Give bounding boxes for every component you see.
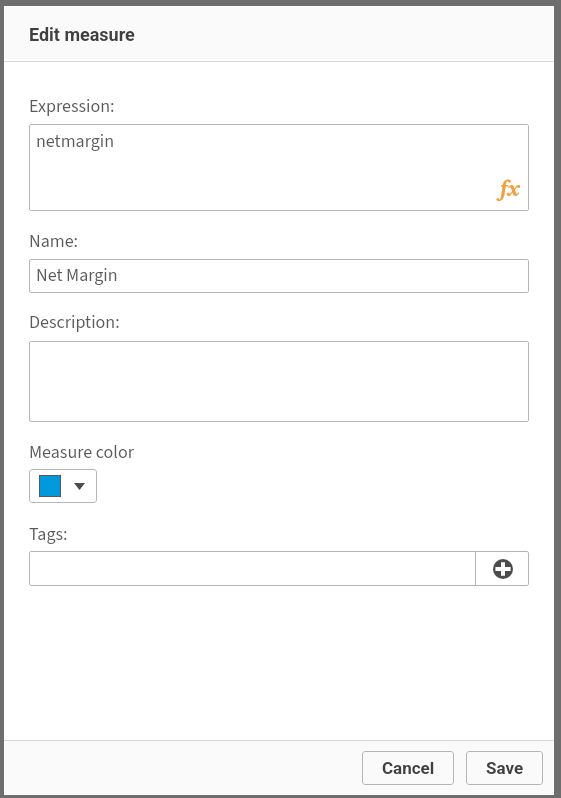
staticText: Name: <box>29 229 79 255</box>
button[interactable] <box>29 341 529 422</box>
staticText: Net Margin <box>36 263 118 289</box>
staticText: Description: <box>29 310 120 336</box>
button[interactable]: Tags input <box>29 551 475 586</box>
staticText: fx <box>500 173 520 203</box>
staticText: Save <box>486 758 524 778</box>
staticText: Measure color <box>29 440 134 466</box>
button[interactable]: netmargin <box>29 124 529 211</box>
staticText: netmargin <box>36 129 115 155</box>
button[interactable]: Add tag <box>476 551 529 586</box>
button[interactable]: Net Margin <box>29 259 529 293</box>
staticText: Expression: <box>29 94 115 120</box>
button[interactable]: Choose measure color <box>29 469 97 503</box>
staticText: Edit measure <box>29 24 135 45</box>
staticText: Tags: <box>29 522 68 548</box>
staticText: Cancel <box>382 758 435 778</box>
button[interactable]: Cancel <box>362 751 454 785</box>
button[interactable]: Save <box>466 751 543 785</box>
